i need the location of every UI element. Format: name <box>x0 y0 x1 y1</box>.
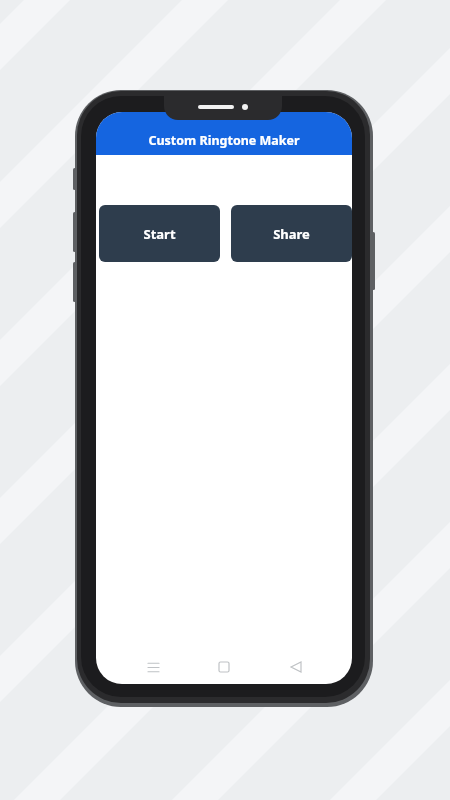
button[interactable]: Share <box>231 205 352 262</box>
staticText: Share <box>273 225 310 243</box>
staticText: Custom Ringtone Maker <box>148 132 300 149</box>
button[interactable]: Recent apps <box>138 652 168 682</box>
button[interactable]: Back <box>281 652 311 682</box>
staticText: Start <box>143 225 176 243</box>
button[interactable]: Start <box>99 205 220 262</box>
button[interactable]: Home <box>209 652 239 682</box>
